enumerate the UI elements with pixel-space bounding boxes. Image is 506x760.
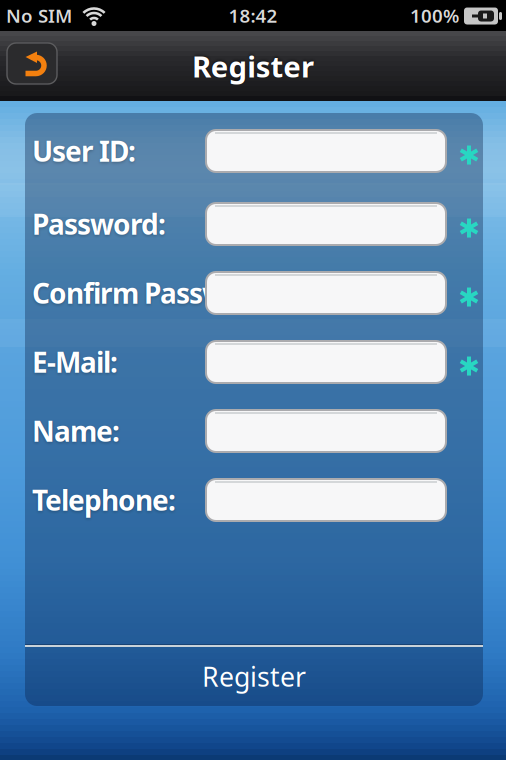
staticText: Telephone: (32, 481, 176, 519)
button[interactable]: User ID: text field (206, 130, 446, 172)
staticText: Register (192, 46, 314, 85)
staticText: E-Mail: (32, 343, 118, 381)
button[interactable]: Telephone: text field (206, 479, 446, 521)
staticText: User ID: (32, 132, 136, 170)
staticText: Name: (32, 412, 120, 450)
staticText: Register (202, 659, 306, 694)
button[interactable]: Name: text field (206, 410, 446, 452)
staticText: No SIM (6, 3, 72, 28)
button[interactable]: Back (7, 43, 57, 84)
button[interactable]: Register (25, 647, 483, 706)
button[interactable]: Confirm Password: text field (206, 272, 446, 314)
staticText: 100% (410, 3, 459, 28)
staticText: Confirm Password: (32, 274, 278, 312)
staticText: Password: (32, 205, 166, 243)
button[interactable]: Password: text field (206, 203, 446, 245)
staticText: 18:42 (228, 3, 277, 28)
button[interactable]: E-Mail: text field (206, 341, 446, 383)
